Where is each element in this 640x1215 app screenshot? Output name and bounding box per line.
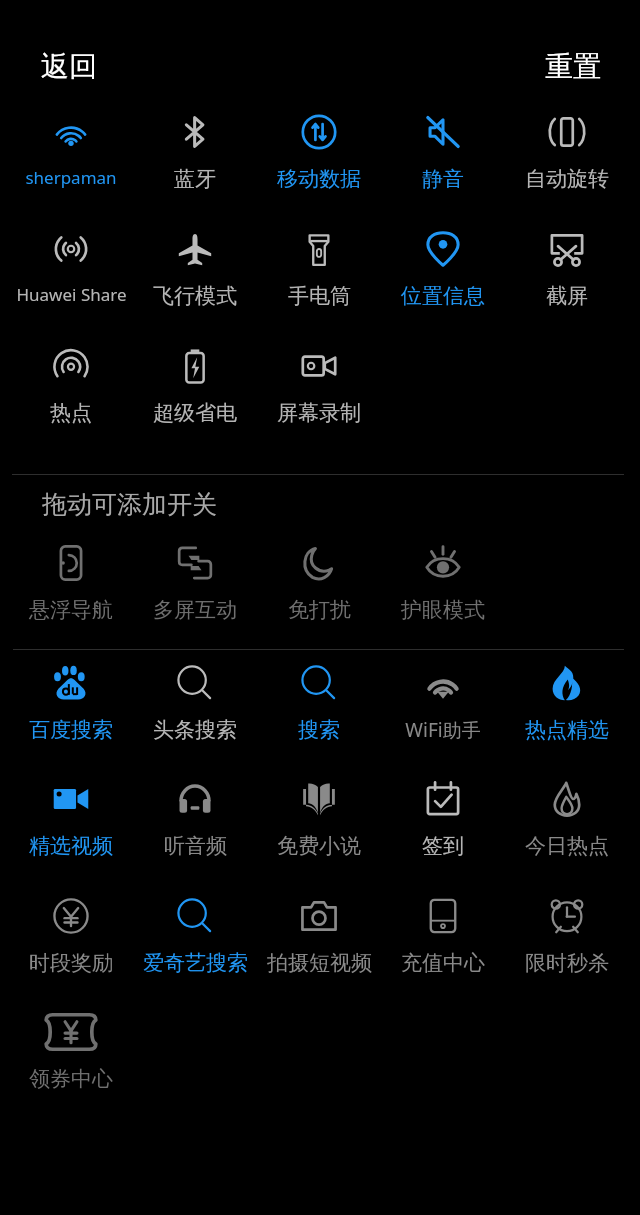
staticText: 签到: [422, 833, 464, 859]
staticText: 热点: [50, 400, 92, 426]
button[interactable]: 蓝牙: [133, 101, 257, 218]
button[interactable]: 免打扰: [257, 532, 381, 649]
button[interactable]: 热点: [9, 335, 133, 452]
staticText: 手电筒: [288, 283, 351, 309]
button[interactable]: 移动数据: [257, 101, 381, 218]
staticText: 超级省电: [153, 400, 237, 426]
staticText: 热点精选: [525, 717, 609, 743]
staticText: 拍摄短视频: [267, 950, 372, 976]
staticText: 听音频: [164, 833, 227, 859]
button[interactable]: sherpaman: [9, 101, 133, 218]
button[interactable]: 屏幕录制: [257, 335, 381, 452]
staticText: 精选视频: [29, 833, 113, 859]
staticText: 返回: [41, 49, 97, 84]
staticText: 搜索: [298, 717, 340, 743]
button[interactable]: 静音: [381, 101, 505, 218]
staticText: Huawei Share: [16, 283, 127, 306]
button[interactable]: 多屏互动: [133, 532, 257, 649]
staticText: 截屏: [546, 283, 588, 309]
button[interactable]: 头条搜索: [133, 652, 257, 769]
staticText: 护眼模式: [401, 597, 485, 623]
staticText: 免打扰: [288, 597, 351, 623]
staticText: 限时秒杀: [525, 950, 609, 976]
button[interactable]: 重置: [537, 41, 609, 92]
staticText: 拖动可添加开关: [42, 489, 217, 520]
staticText: 充值中心: [401, 950, 485, 976]
button[interactable]: 时段奖励: [9, 885, 133, 1002]
staticText: 时段奖励: [29, 950, 113, 976]
staticText: 头条搜索: [153, 717, 237, 743]
button[interactable]: 护眼模式: [381, 532, 505, 649]
button[interactable]: 热点精选: [505, 652, 629, 769]
staticText: WiFi助手: [405, 717, 481, 743]
staticText: 位置信息: [401, 283, 485, 309]
button[interactable]: 今日热点: [505, 768, 629, 885]
button[interactable]: 领券中心: [9, 1001, 133, 1118]
button[interactable]: 听音频: [133, 768, 257, 885]
button[interactable]: 位置信息: [381, 218, 505, 335]
button[interactable]: 爱奇艺搜索: [133, 885, 257, 1002]
staticText: sherpaman: [25, 166, 117, 189]
staticText: 今日热点: [525, 833, 609, 859]
button[interactable]: 精选视频: [9, 768, 133, 885]
button[interactable]: 百度搜索: [9, 652, 133, 769]
staticText: 移动数据: [277, 166, 361, 192]
button[interactable]: Huawei Share: [9, 218, 133, 335]
staticText: 百度搜索: [29, 717, 113, 743]
button[interactable]: 手电筒: [257, 218, 381, 335]
staticText: 屏幕录制: [277, 400, 361, 426]
staticText: 蓝牙: [174, 166, 216, 192]
button[interactable]: 返回: [33, 41, 105, 92]
staticText: 爱奇艺搜索: [143, 950, 248, 976]
button[interactable]: 充值中心: [381, 885, 505, 1002]
staticText: 悬浮导航: [29, 597, 113, 623]
staticText: 飞行模式: [153, 283, 237, 309]
button[interactable]: 限时秒杀: [505, 885, 629, 1002]
button[interactable]: WiFi助手: [381, 652, 505, 769]
button[interactable]: 拍摄短视频: [257, 885, 381, 1002]
staticText: 静音: [422, 166, 464, 192]
button[interactable]: 截屏: [505, 218, 629, 335]
staticText: 领券中心: [29, 1066, 113, 1092]
staticText: 自动旋转: [525, 166, 609, 192]
button[interactable]: 搜索: [257, 652, 381, 769]
button[interactable]: 飞行模式: [133, 218, 257, 335]
button[interactable]: 免费小说: [257, 768, 381, 885]
button[interactable]: 自动旋转: [505, 101, 629, 218]
staticText: 重置: [545, 49, 601, 84]
staticText: 多屏互动: [153, 597, 237, 623]
button[interactable]: 悬浮导航: [9, 532, 133, 649]
button[interactable]: 超级省电: [133, 335, 257, 452]
staticText: 免费小说: [277, 833, 361, 859]
button[interactable]: 签到: [381, 768, 505, 885]
